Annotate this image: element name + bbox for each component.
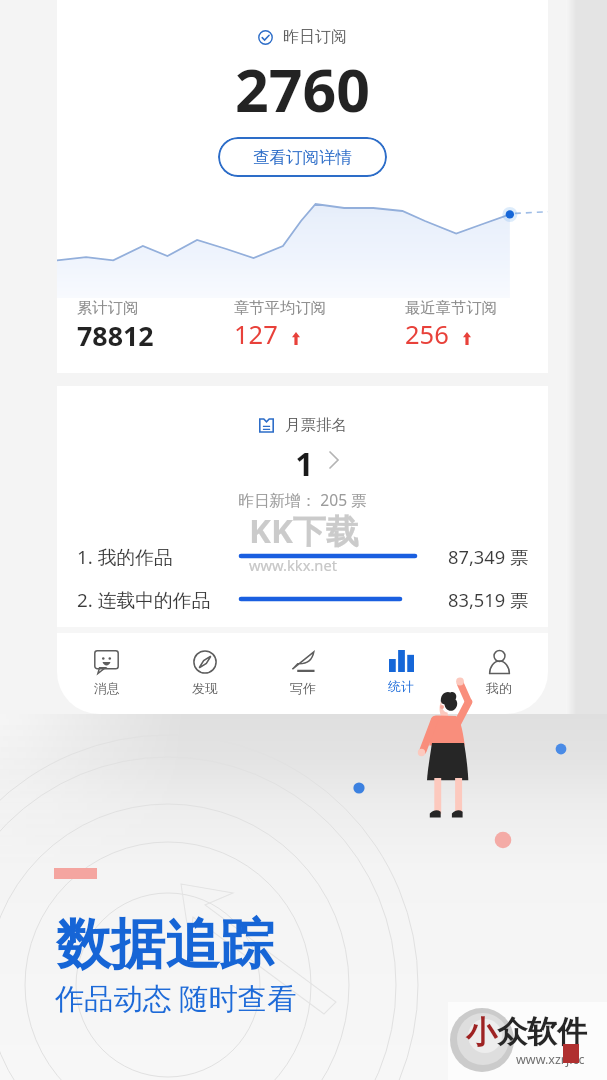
staticText: 昨日订阅 [283, 27, 347, 47]
staticText: 众软件 [497, 1013, 587, 1051]
staticText: 昨日新增： 205 票 [57, 489, 548, 510]
staticText: 消息 [94, 680, 120, 696]
button[interactable]: 我的 [450, 633, 548, 696]
staticText: 83,519 票 [448, 587, 529, 609]
staticText: 我的 [486, 680, 512, 696]
staticText: 最近章节订阅 [405, 298, 497, 317]
staticText: 写作 [290, 680, 316, 696]
staticText: 月票排名 [285, 415, 347, 435]
button[interactable]: 写作 [254, 633, 352, 696]
staticText: www.xzrj.cc [516, 1051, 585, 1068]
staticText: 小 [466, 1013, 497, 1052]
staticText: www.kkx.net [249, 555, 338, 575]
staticText: 87,349 票 [448, 544, 529, 566]
button[interactable]: 统计 [352, 633, 450, 694]
staticText: 查看订阅详情 [253, 147, 352, 168]
staticText: 1. 我的作品 [77, 544, 173, 566]
staticText: 数据追踪 [56, 911, 274, 980]
button[interactable]: 查看订阅详情 [218, 137, 387, 177]
staticText: 作品动态 随时查看 [55, 978, 297, 1018]
staticText: 发现 [192, 680, 218, 696]
button[interactable]: 2. 连载中的作品 [57, 587, 548, 609]
staticText: 2760 [57, 49, 548, 129]
staticText: 累计订阅 [77, 298, 139, 317]
staticText: KK下载 [249, 508, 359, 553]
button[interactable]: 发现 [156, 633, 254, 696]
staticText: 章节平均订阅 [234, 298, 326, 317]
staticText: 2. 连载中的作品 [77, 587, 211, 609]
staticText: 1 [61, 442, 548, 479]
staticText: 78812 [77, 317, 154, 354]
staticText: 统计 [388, 678, 414, 694]
button[interactable]: 1. 我的作品 [57, 544, 548, 566]
staticText: 256 [405, 317, 449, 352]
staticText: 127 [234, 317, 278, 352]
button[interactable]: 昨日订阅 [57, 27, 548, 47]
button[interactable]: 消息 [57, 633, 156, 696]
button[interactable]: 1 [57, 442, 548, 479]
button[interactable]: 月票排名 [57, 415, 548, 435]
